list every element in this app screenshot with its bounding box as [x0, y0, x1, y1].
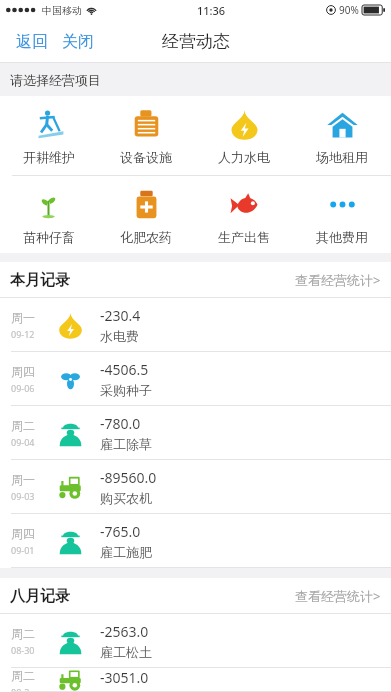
staticText: 本月记录 — [10, 271, 70, 290]
button[interactable]: 周二 — [0, 406, 391, 460]
staticText: 生产出售 — [218, 229, 270, 245]
staticText: 返回 — [16, 32, 48, 52]
staticText: 中国移动 — [42, 4, 82, 17]
button[interactable]: 人力水电 — [195, 96, 293, 175]
staticText: 09-04 — [11, 436, 35, 448]
staticText: 08-30 — [11, 644, 35, 656]
staticText: -765.0 — [100, 522, 141, 541]
button[interactable]: 关闭 — [60, 28, 96, 56]
staticText: -4506.5 — [100, 360, 149, 379]
button[interactable]: 周二 — [0, 614, 391, 668]
button[interactable]: 查看经营统计> — [285, 265, 391, 295]
button[interactable]: 周二 — [0, 668, 391, 692]
staticText: 雇工除草 — [100, 436, 152, 452]
staticText: -89560.0 — [100, 468, 157, 487]
staticText: -2563.0 — [100, 622, 149, 641]
staticText: 请选择经营项目 — [10, 72, 101, 88]
staticText: 雇工松土 — [100, 644, 152, 660]
staticText: 09-06 — [11, 382, 35, 394]
staticText: 08-2 — [11, 686, 30, 692]
staticText: 其他费用 — [316, 229, 368, 245]
staticText: 雇工施肥 — [100, 544, 152, 560]
staticText: 查看经营统计> — [295, 587, 381, 605]
staticText: 09-03 — [11, 490, 35, 502]
staticText: 11:36 — [197, 3, 226, 18]
button[interactable]: 周四 — [0, 352, 391, 406]
button[interactable]: 查看经营统计> — [285, 581, 391, 611]
staticText: 设备设施 — [120, 149, 172, 165]
staticText: 购买农机 — [100, 490, 152, 506]
button[interactable]: 周四 — [0, 514, 391, 568]
staticText: 八月记录 — [10, 587, 70, 606]
staticText: 经营动态 — [162, 31, 230, 52]
staticText: 场地租用 — [316, 149, 368, 165]
staticText: 09-12 — [11, 328, 35, 340]
staticText: 周二 — [11, 668, 35, 683]
button[interactable]: 返回 — [14, 28, 50, 56]
staticText: -780.0 — [100, 414, 141, 433]
button[interactable]: 场地租用 — [293, 96, 391, 175]
button[interactable]: 生产出售 — [195, 176, 293, 253]
staticText: 周二 — [11, 418, 35, 433]
staticText: 周四 — [11, 526, 35, 541]
button[interactable]: 开耕维护 — [0, 96, 97, 175]
button[interactable]: 周一 — [0, 298, 391, 352]
staticText: 水电费 — [100, 328, 139, 344]
staticText: 化肥农药 — [120, 229, 172, 245]
staticText: -230.4 — [100, 306, 141, 325]
staticText: 周二 — [11, 626, 35, 641]
button[interactable]: 化肥农药 — [97, 176, 195, 253]
staticText: 周一 — [11, 310, 35, 325]
staticText: 人力水电 — [218, 149, 270, 165]
staticText: 采购种子 — [100, 382, 152, 398]
button[interactable]: 周一 — [0, 460, 391, 514]
staticText: 苗种仔畜 — [23, 229, 75, 245]
staticText: 09-01 — [11, 544, 35, 556]
button[interactable]: 设备设施 — [97, 96, 195, 175]
staticText: 关闭 — [62, 32, 94, 52]
button[interactable]: 苗种仔畜 — [0, 176, 97, 253]
staticText: 周四 — [11, 364, 35, 379]
button[interactable]: 其他费用 — [293, 176, 391, 253]
staticText: 90% — [339, 3, 359, 17]
staticText: 周一 — [11, 472, 35, 487]
staticText: -3051.0 — [100, 668, 149, 687]
staticText: 查看经营统计> — [295, 271, 381, 289]
staticText: 开耕维护 — [23, 149, 75, 165]
